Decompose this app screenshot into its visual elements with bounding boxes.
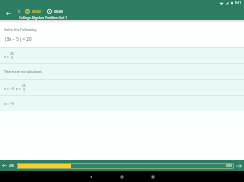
- staticText: 3: [11, 56, 13, 60]
- button[interactable]: x = −5 x =: [0, 80, 244, 95]
- button[interactable]: x =: [0, 48, 244, 63]
- staticText: 00:00: [54, 9, 63, 14]
- staticText: 4/8: [9, 164, 14, 168]
- staticText: There are no solutions: [4, 69, 42, 74]
- button[interactable]: There are no solutions: [0, 64, 244, 79]
- staticText: Solve the Following: [4, 27, 37, 32]
- staticText: 50%: [226, 164, 232, 168]
- button[interactable]: Previous question: [0, 160, 9, 171]
- button[interactable]: Next question: [234, 160, 244, 171]
- staticText: College Algebra Problem Set 1: [19, 15, 68, 20]
- button[interactable]: Back: [85, 171, 97, 182]
- button[interactable]: Recent apps: [147, 171, 159, 182]
- staticText: 5:11: [235, 1, 242, 5]
- button[interactable]: Back: [0, 6, 17, 20]
- button[interactable]: Home: [116, 171, 128, 182]
- staticText: x = −5: [4, 101, 14, 106]
- staticText: 25: [10, 52, 14, 56]
- staticText: x =: [4, 54, 10, 59]
- staticText: 25: [22, 84, 26, 88]
- staticText: 3: [23, 88, 25, 92]
- staticText: 00:04: [32, 9, 41, 14]
- staticText: x = −5 x =: [4, 86, 22, 91]
- staticText: |3x − 5| = 20: [4, 36, 32, 42]
